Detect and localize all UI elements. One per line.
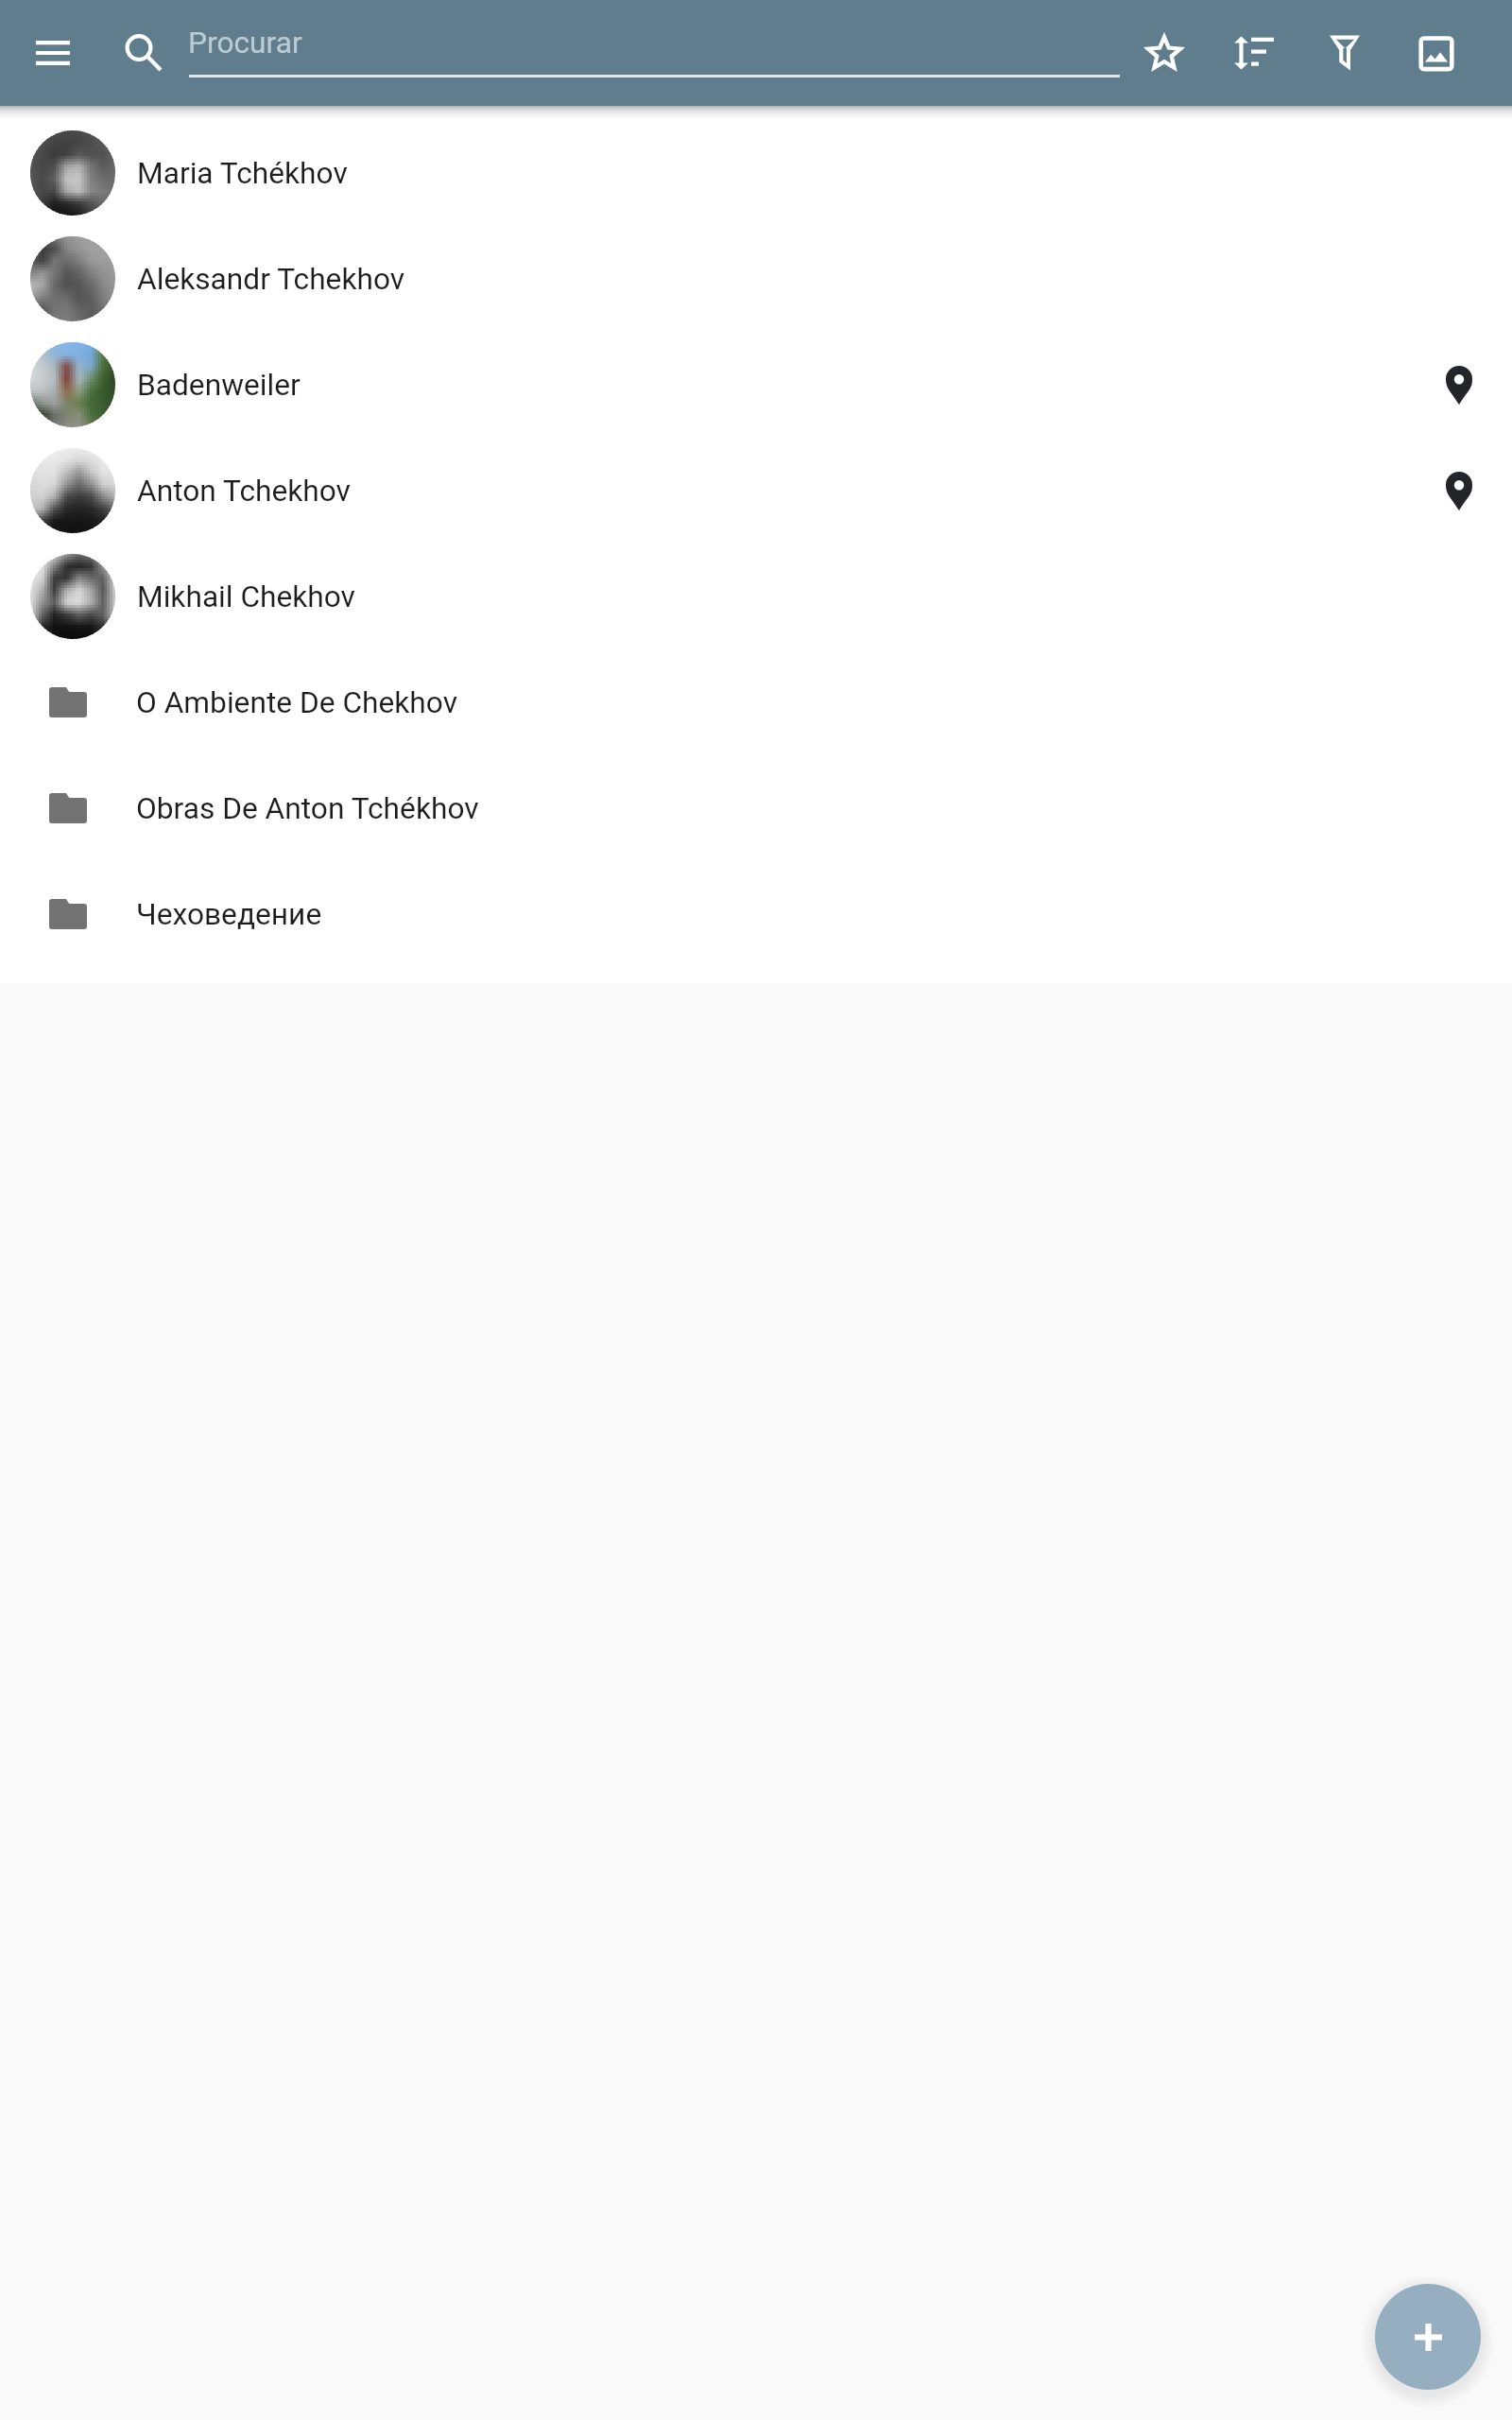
staticText: Aleksandr Tchekhov [137, 262, 1493, 297]
button[interactable]: Aleksandr Tchekhov [0, 226, 1512, 332]
staticText: Чеховедение [136, 897, 1493, 932]
button[interactable]: Location [1414, 438, 1504, 544]
staticText: Procurar [188, 26, 302, 60]
button[interactable]: O Ambiente De Chekhov [0, 649, 1512, 755]
button[interactable]: Filter [1301, 0, 1388, 106]
button[interactable]: Location [1414, 332, 1504, 438]
button[interactable]: Mikhail Chekhov [0, 544, 1512, 649]
staticText: Badenweiler [137, 368, 1414, 403]
button[interactable]: Maria Tchékhov [0, 120, 1512, 226]
button[interactable]: Sort [1211, 0, 1297, 106]
staticText: Mikhail Chekhov [137, 579, 1493, 614]
button[interactable]: Чеховедение [0, 861, 1512, 967]
button[interactable]: Badenweiler [0, 332, 1512, 438]
staticText: Maria Tchékhov [137, 156, 1493, 191]
button[interactable]: Obras De Anton Tchékhov [0, 755, 1512, 861]
staticText: Obras De Anton Tchékhov [136, 791, 1493, 826]
staticText: O Ambiente De Chekhov [136, 685, 1493, 720]
button[interactable]: Gallery [1393, 0, 1480, 106]
button[interactable]: Add [1375, 2284, 1481, 2390]
button[interactable]: Anton Tchekhov [0, 438, 1512, 544]
button[interactable]: Search [98, 0, 189, 106]
staticText: Anton Tchekhov [137, 474, 1414, 509]
button[interactable]: Favourites [1121, 0, 1208, 106]
button[interactable]: Menu [8, 0, 98, 106]
